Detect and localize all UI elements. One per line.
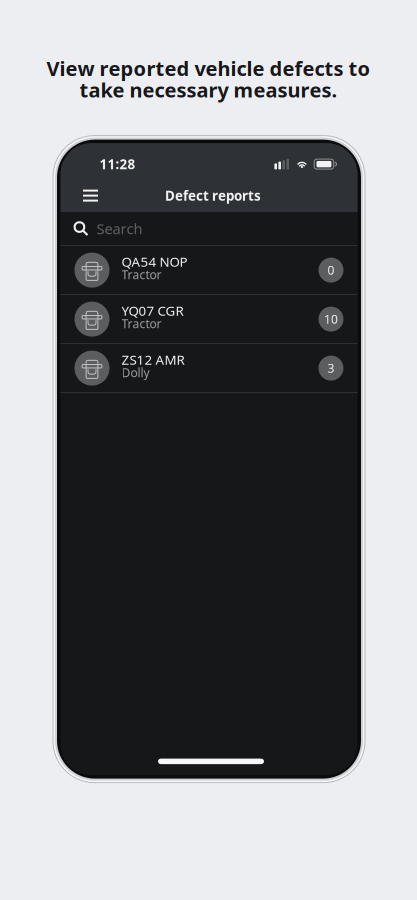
staticText: Tractor (121, 315, 161, 331)
button[interactable]: QA54 NOP (60, 246, 357, 295)
staticText: 0 (327, 262, 334, 278)
staticText: 11:28 (99, 155, 135, 173)
button[interactable]: Search (60, 212, 357, 245)
staticText: YQ07 CGR (121, 302, 183, 319)
staticText: Defect reports (165, 187, 261, 204)
staticText: QA54 NOP (121, 253, 187, 270)
staticText: Tractor (121, 266, 161, 282)
staticText: View reported vehicle defects to (46, 55, 370, 82)
staticText: Search (96, 219, 142, 238)
button[interactable]: ZS12 AMR (60, 344, 357, 393)
staticText: Dolly (121, 364, 149, 380)
staticText: 10 (324, 311, 338, 327)
button[interactable]: YQ07 CGR (60, 295, 357, 344)
staticText: ZS12 AMR (121, 351, 184, 368)
button[interactable]: Menu (74, 181, 106, 211)
staticText: take necessary measures. (79, 77, 337, 103)
staticText: 3 (327, 360, 334, 376)
